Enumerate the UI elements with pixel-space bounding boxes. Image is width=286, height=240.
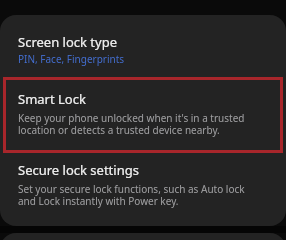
- staticText: Set your secure lock functions, such as …: [18, 182, 245, 208]
- button[interactable]: Screen lock type: [0, 24, 286, 72]
- button[interactable]: Smart Lock: [0, 83, 286, 155]
- staticText: PIN, Face, Fingerprints: [18, 52, 125, 66]
- staticText: Smart Lock: [18, 90, 86, 108]
- staticText: Secure lock settings: [18, 161, 139, 179]
- button[interactable]: Secure lock settings: [0, 155, 286, 215]
- staticText: Screen lock type: [18, 33, 117, 51]
- staticText: Keep your phone unlocked when it's in a …: [18, 111, 245, 137]
